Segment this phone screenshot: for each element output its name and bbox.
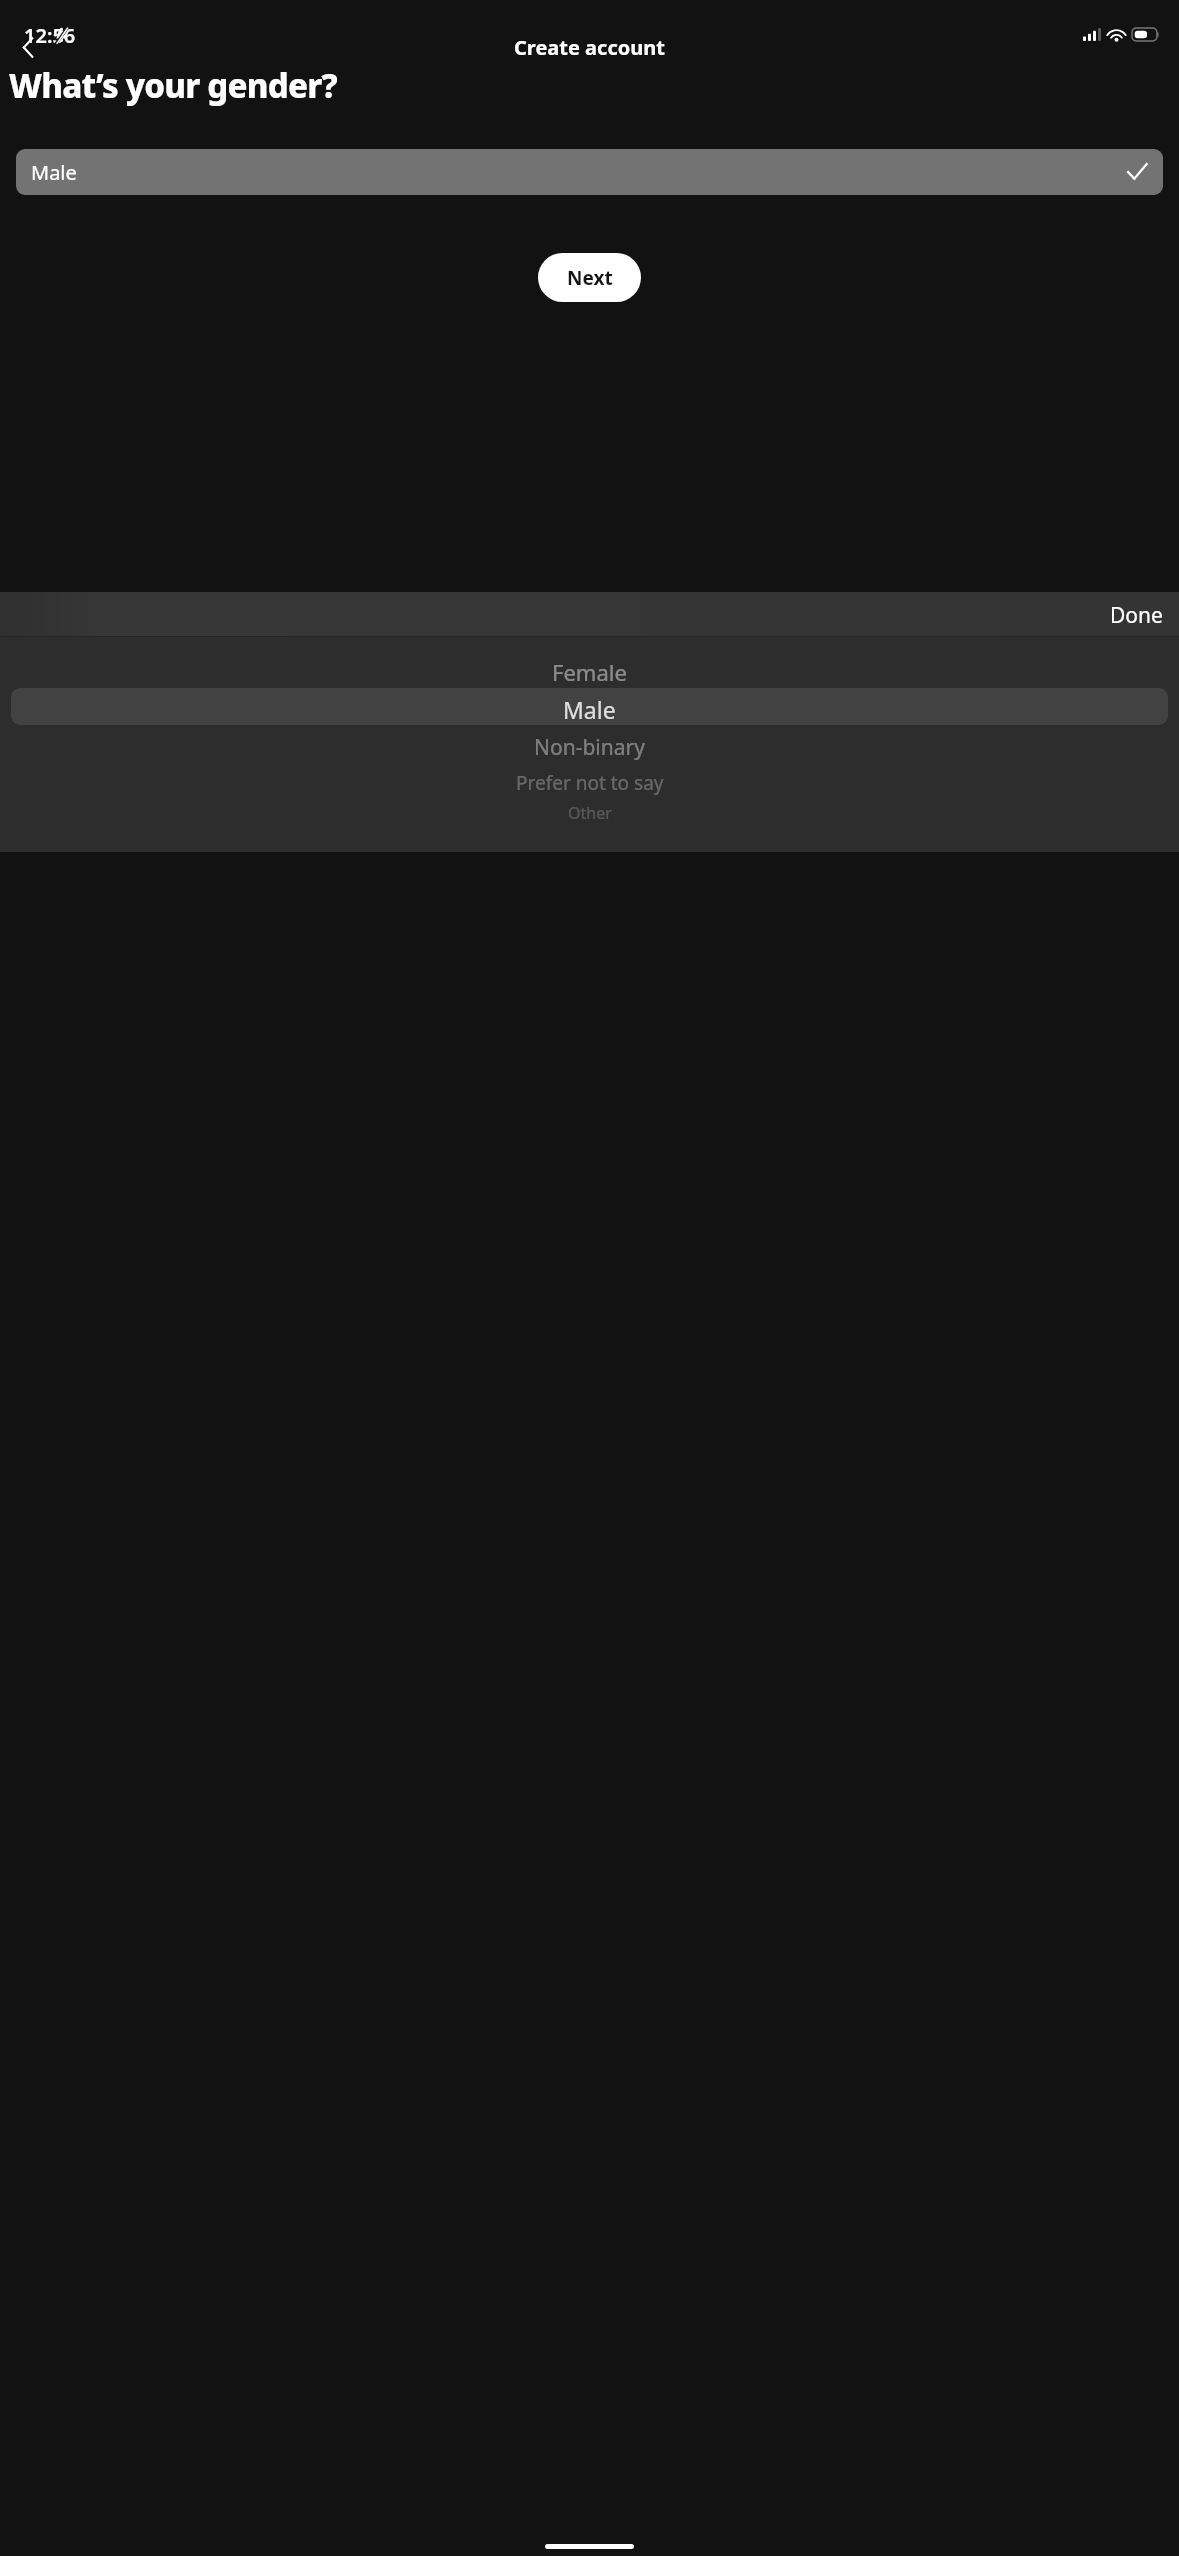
staticText: Female xyxy=(552,657,627,687)
staticText: Create account xyxy=(514,34,665,61)
staticText: Male xyxy=(563,694,616,725)
staticText: Male xyxy=(31,159,77,186)
button[interactable]: Back xyxy=(2,28,54,66)
button[interactable]: Male xyxy=(0,691,1179,728)
button[interactable]: Female xyxy=(0,653,1179,691)
button[interactable]: Next xyxy=(538,253,641,302)
button[interactable]: Prefer not to say xyxy=(0,766,1179,800)
staticText: Done xyxy=(1110,601,1163,627)
staticText: Next xyxy=(567,265,613,291)
staticText: Prefer not to say xyxy=(516,770,664,796)
staticText: Non-binary xyxy=(534,733,645,762)
button[interactable]: Male xyxy=(16,149,1163,195)
button[interactable]: Non-binary xyxy=(0,728,1179,766)
staticText: 12:56 xyxy=(24,22,76,49)
button[interactable]: Done xyxy=(1094,592,1179,636)
staticText: Other xyxy=(568,802,612,824)
staticText: What’s your gender? xyxy=(9,63,337,108)
